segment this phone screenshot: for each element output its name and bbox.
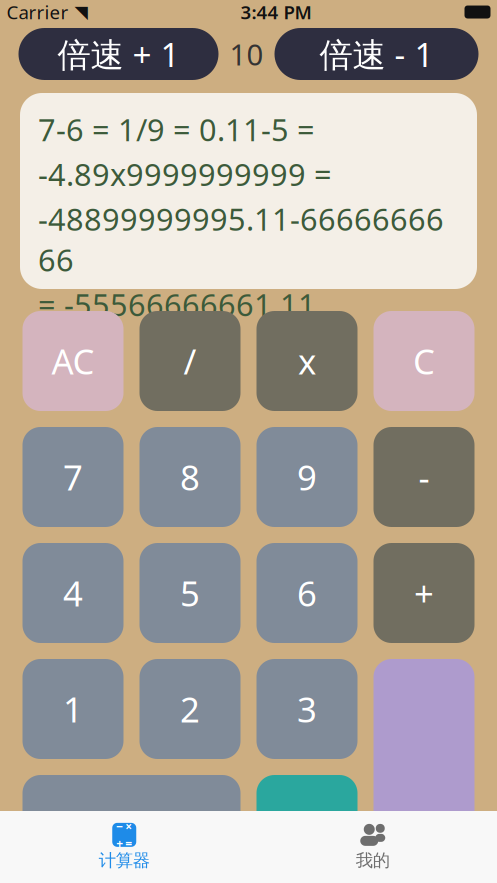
button[interactable]: 2 [139,659,240,759]
staticText: 9 [297,454,317,500]
staticText: = [414,803,434,849]
button[interactable]: 8 [139,427,240,527]
staticText: 3 [297,686,317,732]
staticText: . [302,802,311,848]
button[interactable]: - [373,427,474,527]
staticText: = -55566666661.11 [38,284,316,325]
staticText: 0 [121,802,141,848]
button[interactable]: 5 [139,543,240,643]
staticText: AC [51,338,94,384]
staticText: ◥ [74,2,87,22]
button[interactable]: . [256,775,357,875]
button[interactable]: 倍速 + 1 [18,28,218,80]
staticText: 计算器 [99,850,150,871]
button[interactable]: 1 [22,659,123,759]
staticText: 6 [297,570,317,616]
staticText: x [298,338,316,384]
button[interactable]: / [139,311,240,411]
button[interactable]: 3 [256,659,357,759]
staticText: 我的 [356,850,390,871]
button[interactable]: + [373,543,474,643]
staticText: 10 [229,34,263,73]
staticText: / [183,338,196,384]
button[interactable]: AC [22,311,123,411]
staticText: -48899999995.11-6666666666 [38,198,444,280]
button[interactable]: 6 [256,543,357,643]
staticText: 1 [63,686,83,732]
button[interactable]: 7 [22,427,123,527]
button[interactable]: − [0,816,248,878]
staticText: 倍速 - 1 [319,32,433,76]
staticText: 8 [180,454,200,500]
staticText: + [414,570,434,616]
staticText: − [116,818,123,834]
button[interactable]: 4 [22,543,123,643]
staticText: 4 [63,570,83,616]
staticText: = [125,835,132,851]
staticText: × [125,818,132,834]
button[interactable]: x [256,311,357,411]
button[interactable]: C [373,311,474,411]
staticText: 7 [63,454,83,500]
staticText: - [418,454,429,500]
staticText: 2 [180,686,200,732]
button[interactable]: 我的 [248,816,497,878]
button[interactable]: 9 [256,427,357,527]
staticText: 7-6 = 1/9 = 0.11-5 = [38,109,315,150]
button[interactable]: 倍速 - 1 [274,28,478,80]
staticText: Carrier [6,0,68,24]
staticText: + [116,835,123,851]
staticText: C [413,338,435,384]
button[interactable]: 0 [22,775,240,875]
button[interactable]: = [373,659,474,875]
staticText: 5 [180,570,200,616]
staticText: -4.89x9999999999 = [38,154,332,194]
staticText: 倍速 + 1 [57,32,179,76]
staticText: 3:44 PM [240,0,311,24]
